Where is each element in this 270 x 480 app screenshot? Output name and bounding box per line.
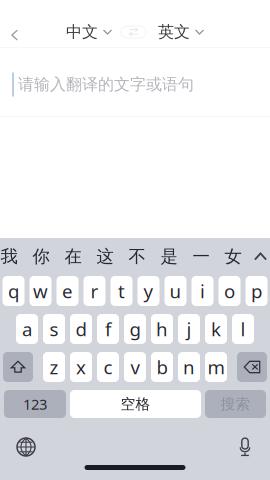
staticText: q [8, 279, 19, 303]
staticText: r [90, 279, 98, 303]
staticText: 一 [192, 246, 209, 267]
button[interactable]: v [124, 352, 146, 382]
staticText: g [129, 317, 140, 341]
button[interactable]: Back [0, 0, 29, 48]
button[interactable]: t [110, 276, 132, 306]
button[interactable]: m [205, 352, 227, 382]
button[interactable]: Shift [3, 352, 33, 382]
staticText: f [105, 317, 111, 341]
staticText: j [186, 317, 191, 341]
staticText: i [200, 279, 205, 303]
staticText: o [224, 279, 235, 303]
button[interactable]: x [70, 352, 92, 382]
button[interactable]: 中文 [66, 16, 112, 48]
staticText: p [251, 279, 262, 303]
staticText: s [49, 317, 58, 341]
button[interactable]: i [191, 276, 213, 306]
button[interactable]: l [232, 314, 254, 344]
button[interactable]: n [178, 352, 200, 382]
button[interactable]: 在 [57, 240, 89, 272]
staticText: 女 [224, 246, 241, 267]
staticText: x [76, 355, 86, 379]
button[interactable]: a [16, 314, 38, 344]
button[interactable]: 不 [121, 240, 153, 272]
button[interactable]: Swap languages [121, 16, 146, 48]
button[interactable]: 一 [185, 240, 217, 272]
staticText: z [49, 355, 58, 379]
staticText: 我 [0, 246, 17, 267]
staticText: 中文 [66, 22, 98, 42]
button[interactable]: Delete [237, 352, 267, 382]
button[interactable]: Change keyboard [9, 433, 43, 461]
button[interactable]: 女 [217, 240, 249, 272]
button[interactable]: o [218, 276, 240, 306]
staticText: 搜索 [220, 395, 250, 413]
staticText: 英文 [158, 22, 190, 42]
staticText: e [62, 279, 73, 303]
staticText: t [118, 279, 125, 303]
staticText: a [22, 317, 32, 341]
button[interactable]: f [97, 314, 119, 344]
staticText: y [143, 279, 153, 303]
button[interactable]: k [205, 314, 227, 344]
button[interactable]: g [124, 314, 146, 344]
staticText: 空格 [120, 395, 150, 413]
button[interactable]: 123 [4, 390, 66, 418]
staticText: 123 [23, 394, 47, 414]
button[interactable]: 搜索 [205, 390, 266, 418]
button[interactable]: h [151, 314, 173, 344]
button[interactable]: 这 [89, 240, 121, 272]
staticText: 是 [160, 246, 177, 267]
button[interactable]: r [83, 276, 105, 306]
button[interactable]: q [2, 276, 24, 306]
button[interactable]: 是 [153, 240, 185, 272]
staticText: d [75, 317, 86, 341]
staticText: 在 [64, 246, 81, 267]
staticText: 不 [128, 246, 145, 267]
button[interactable]: s [43, 314, 65, 344]
staticText: u [169, 279, 181, 303]
staticText: 请输入翻译的文字或语句 [18, 75, 194, 94]
staticText: 你 [32, 246, 49, 267]
staticText: c [103, 355, 112, 379]
button[interactable]: More candidates [249, 240, 270, 272]
staticText: l [240, 317, 245, 341]
button[interactable]: z [43, 352, 65, 382]
button[interactable]: c [97, 352, 119, 382]
button[interactable]: u [164, 276, 186, 306]
button[interactable]: e [56, 276, 78, 306]
staticText: 这 [96, 246, 113, 267]
button[interactable]: 英文 [158, 16, 204, 48]
button[interactable]: 我 [0, 240, 25, 272]
staticText: w [33, 279, 48, 303]
button[interactable]: 你 [25, 240, 57, 272]
staticText: b [156, 355, 167, 379]
staticText: h [156, 317, 168, 341]
button[interactable]: j [178, 314, 200, 344]
staticText: m [207, 355, 224, 379]
button[interactable]: b [151, 352, 173, 382]
staticText: n [183, 355, 195, 379]
button[interactable]: Dictation [228, 433, 262, 461]
button[interactable]: p [245, 276, 267, 306]
button[interactable]: y [137, 276, 159, 306]
button[interactable]: 空格 [70, 390, 201, 418]
button[interactable]: d [70, 314, 92, 344]
staticText: k [211, 317, 221, 341]
button[interactable]: w [29, 276, 51, 306]
staticText: v [130, 355, 139, 379]
